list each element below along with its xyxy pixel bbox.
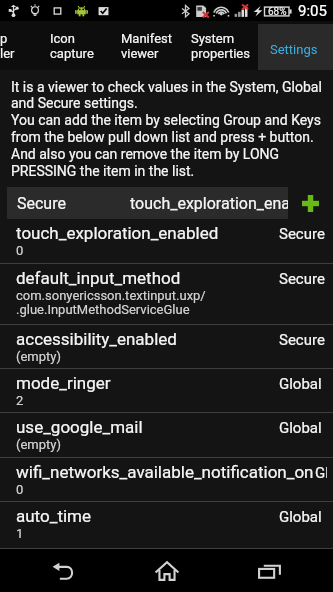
button[interactable]: Back (22, 549, 104, 592)
staticText: Global (279, 375, 322, 393)
button[interactable]: Secure (7, 187, 121, 219)
button[interactable]: Global (0, 369, 333, 413)
staticText: (empty) (16, 349, 61, 364)
button[interactable]: Icon (38, 21, 109, 70)
staticText: auto_time (16, 506, 91, 526)
button[interactable]: p (0, 21, 38, 70)
staticText: ler (0, 46, 15, 61)
staticText: System (191, 31, 235, 46)
button[interactable]: Home (126, 549, 208, 592)
staticText: default_input_method (16, 268, 181, 288)
button[interactable]: Secure (0, 264, 333, 325)
staticText: 0 (16, 243, 24, 258)
staticText: Global (279, 419, 322, 437)
button[interactable]: Global (0, 502, 333, 549)
staticText: touch_exploration_enabled (16, 223, 219, 243)
staticText: Global (279, 508, 322, 526)
button[interactable]: Secure (0, 219, 333, 264)
staticText: p (0, 31, 8, 46)
button[interactable]: Manifest (109, 21, 179, 70)
button[interactable]: Add item (288, 187, 333, 219)
staticText: use_google_mail (16, 417, 143, 437)
staticText: Secure (279, 270, 325, 288)
staticText: 2 (16, 393, 24, 408)
staticText: 1 (16, 526, 24, 541)
button[interactable]: Settings (258, 21, 333, 70)
staticText: Secure (279, 225, 325, 243)
staticText: Icon (50, 31, 75, 46)
staticText: capture (50, 46, 94, 61)
staticText: Manifest (121, 31, 172, 46)
staticText: 0 (16, 482, 24, 497)
staticText: Settings (270, 42, 318, 57)
staticText: 68% (268, 6, 287, 18)
staticText: Secure (279, 331, 325, 349)
button[interactable]: touch_exploration_enabled (121, 187, 288, 219)
staticText: It is a viewer to check values in the Sy… (11, 79, 322, 180)
staticText: viewer (121, 46, 159, 61)
staticText: touch_exploration_enabled (130, 194, 288, 213)
button[interactable]: Recent apps (229, 549, 311, 592)
staticText: mode_ringer (16, 373, 111, 393)
button[interactable]: Global (0, 458, 333, 502)
staticText: accessibility_enabled (16, 329, 177, 349)
staticText: properties (191, 46, 250, 61)
button[interactable]: System (179, 21, 258, 70)
staticText: wifi_networks_available_notification_on (16, 462, 314, 482)
button[interactable]: Secure (0, 325, 333, 369)
staticText: 9:05 (298, 2, 327, 20)
staticText: Secure (17, 194, 66, 213)
button[interactable]: Global (0, 413, 333, 458)
staticText: com.sonyericsson.textinput.uxp/ .glue.In… (16, 288, 206, 317)
staticText: Global (315, 464, 327, 482)
staticText: (empty) (16, 437, 61, 452)
